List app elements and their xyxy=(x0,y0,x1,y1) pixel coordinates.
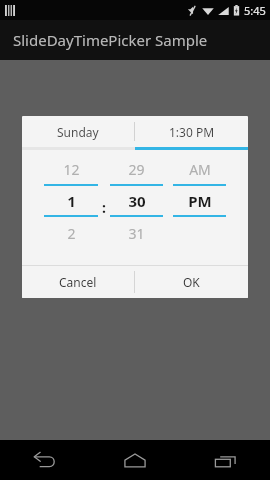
staticText: Sunday xyxy=(57,124,99,140)
staticText: 12 xyxy=(63,160,80,179)
button[interactable]: Home xyxy=(90,440,180,480)
button[interactable]: Minute xyxy=(110,150,163,265)
button[interactable]: OK xyxy=(135,266,248,298)
staticText: 1 xyxy=(67,191,76,211)
staticText: 5:45 xyxy=(244,3,266,18)
staticText: SlideDayTimePicker Sample xyxy=(13,30,208,50)
button[interactable]: Sunday xyxy=(22,116,134,147)
button[interactable]: AM PM xyxy=(173,150,226,265)
staticText: 31 xyxy=(128,224,145,243)
button[interactable]: 1:30 PM xyxy=(135,116,248,147)
staticText: 1:30 PM xyxy=(169,124,215,140)
button[interactable]: Recent apps xyxy=(180,440,270,480)
staticText: 30 xyxy=(128,191,146,211)
button[interactable]: Back xyxy=(0,440,90,480)
staticText: AM xyxy=(189,160,211,179)
staticText: Cancel xyxy=(59,274,97,290)
staticText: 29 xyxy=(128,160,145,179)
staticText: OK xyxy=(183,274,200,290)
staticText: : xyxy=(102,198,106,217)
button[interactable]: Cancel xyxy=(22,266,134,298)
staticText: PM xyxy=(188,191,212,211)
button[interactable]: Hour xyxy=(44,150,98,265)
staticText: 2 xyxy=(67,224,76,243)
